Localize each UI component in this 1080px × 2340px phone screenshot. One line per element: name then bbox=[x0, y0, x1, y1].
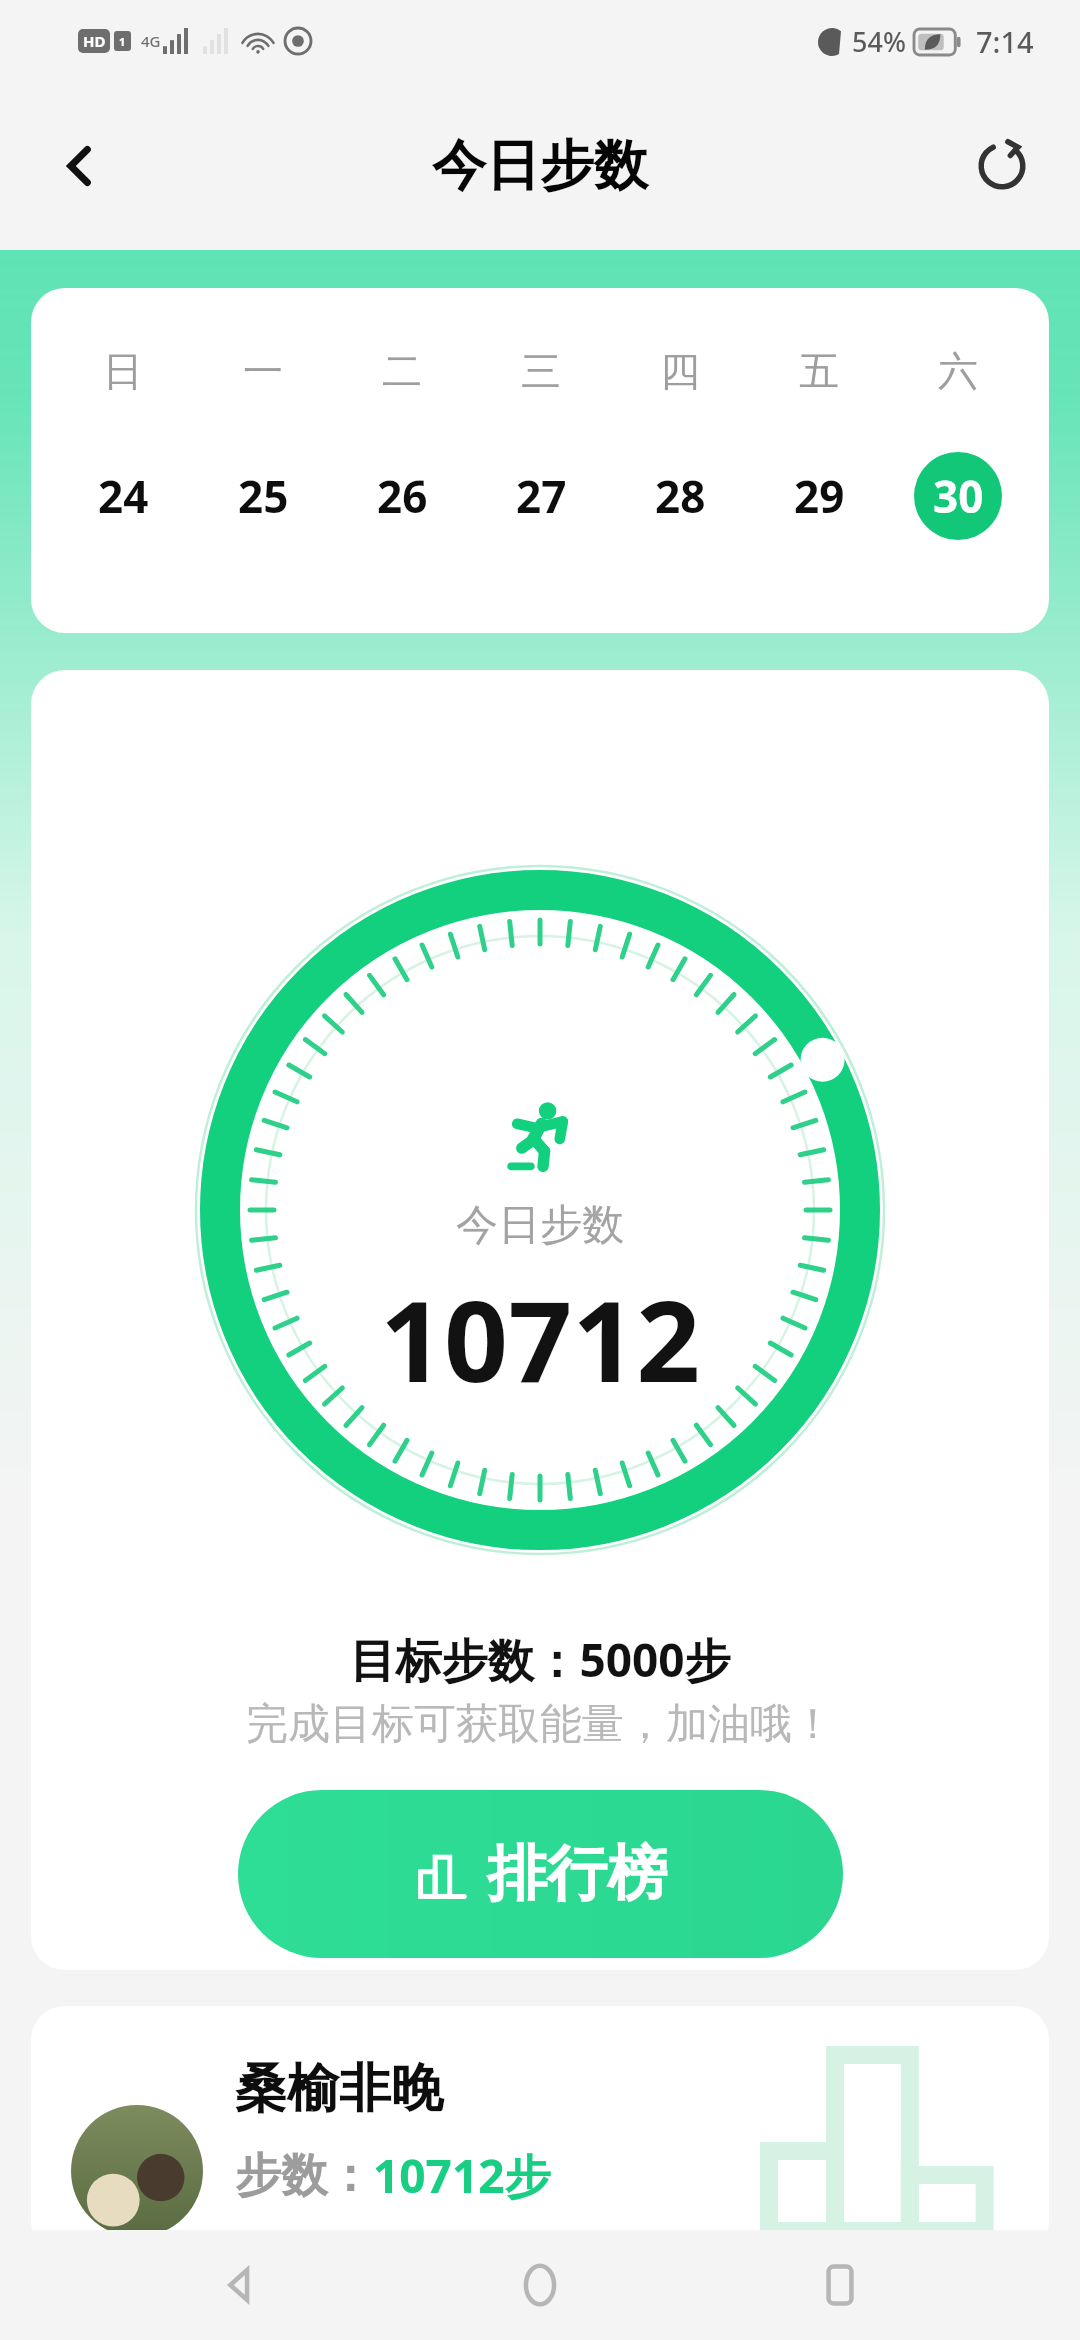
button[interactable]: Recents bbox=[780, 2230, 900, 2340]
button[interactable]: 日 bbox=[31, 288, 1049, 633]
staticText: 目标步数：5000步 bbox=[349, 1628, 731, 1691]
staticText: 六 bbox=[938, 346, 978, 396]
staticText: 完成目标可获取能量，加油哦！ bbox=[246, 1698, 834, 1751]
button[interactable]: 30 bbox=[914, 452, 1002, 540]
button[interactable]: Refresh bbox=[952, 116, 1052, 216]
staticText: 4G bbox=[141, 31, 161, 51]
staticText: 日 bbox=[103, 346, 143, 396]
button[interactable]: 29 bbox=[775, 452, 863, 540]
staticText: 五 bbox=[799, 346, 839, 396]
staticText: 1 bbox=[119, 34, 126, 49]
button[interactable]: Back bbox=[30, 116, 130, 216]
button[interactable]: 25 bbox=[219, 452, 307, 540]
button[interactable]: Home bbox=[480, 2230, 600, 2340]
button[interactable]: 24 bbox=[79, 452, 167, 540]
staticText: 27 bbox=[516, 466, 567, 526]
button[interactable]: 28 bbox=[636, 452, 724, 540]
staticText: 24 bbox=[98, 466, 149, 526]
button[interactable]: 26 bbox=[358, 452, 446, 540]
button[interactable]: 27 bbox=[497, 452, 585, 540]
staticText: 30 bbox=[933, 466, 984, 526]
staticText: 28 bbox=[655, 466, 706, 526]
staticText: 26 bbox=[377, 466, 428, 526]
staticText: 10712步 bbox=[373, 2144, 551, 2207]
staticText: 今日步数 bbox=[432, 132, 648, 200]
staticText: 今日步数 bbox=[456, 1199, 624, 1252]
button[interactable]: 桑榆非晚 bbox=[31, 2006, 1049, 2256]
staticText: 一 bbox=[243, 346, 283, 396]
staticText: 三 bbox=[521, 346, 561, 396]
staticText: 排行榜 bbox=[487, 1836, 667, 1912]
staticText: 二 bbox=[382, 346, 422, 396]
staticText: 四 bbox=[660, 346, 700, 396]
staticText: HD bbox=[83, 31, 106, 51]
staticText: 步数： bbox=[235, 2147, 373, 2205]
staticText: 54% bbox=[852, 23, 906, 60]
button[interactable]: Back bbox=[180, 2230, 300, 2340]
staticText: 29 bbox=[794, 466, 845, 526]
button[interactable]: 排行榜 bbox=[238, 1790, 843, 1958]
staticText: 桑榆非晚 bbox=[235, 2056, 443, 2122]
staticText: 7:14 bbox=[976, 22, 1034, 61]
staticText: 25 bbox=[238, 466, 289, 526]
staticText: 10712 bbox=[380, 1262, 701, 1415]
